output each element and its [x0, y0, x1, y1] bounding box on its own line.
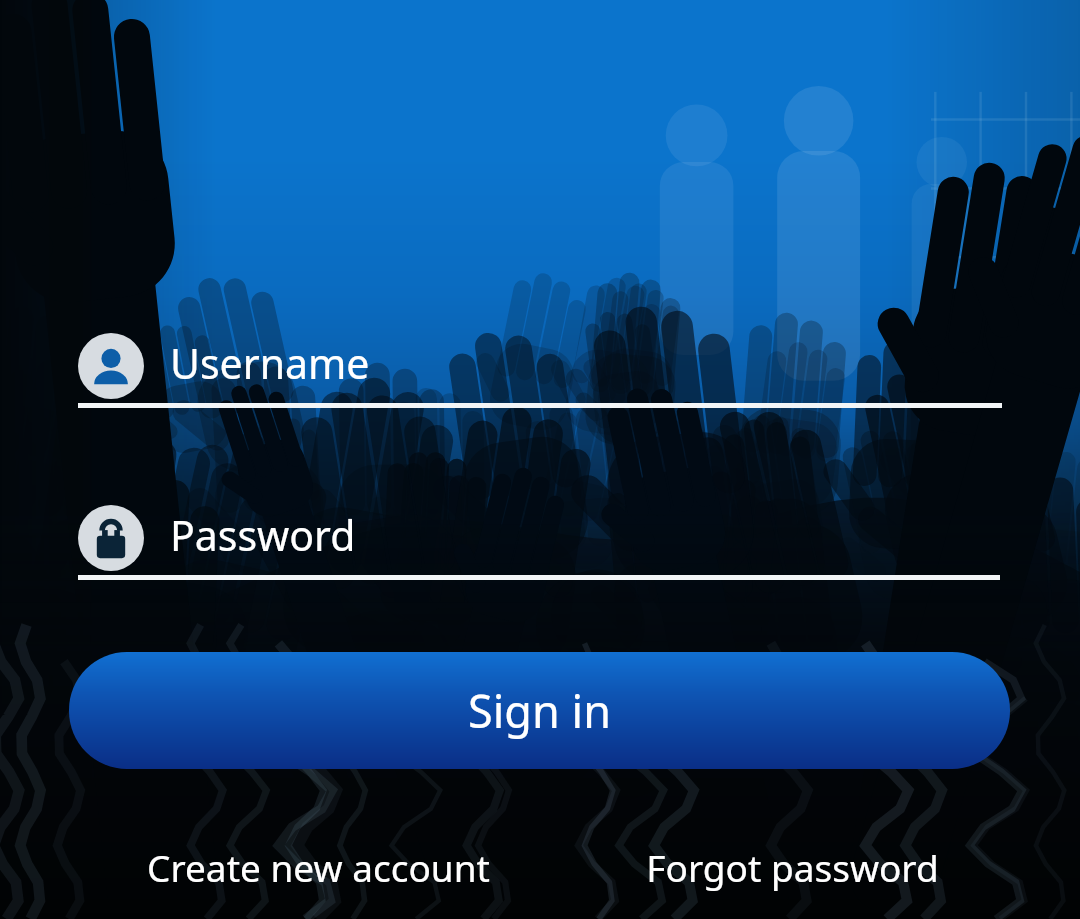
staticText: Username	[170, 335, 370, 391]
staticText: Password	[170, 507, 356, 563]
other: Password	[78, 505, 144, 571]
button[interactable]: Forgot password	[618, 836, 966, 898]
button[interactable]: Sign in	[69, 652, 1010, 769]
staticText: Create new account	[147, 842, 490, 892]
other: Username	[78, 333, 144, 399]
staticText: Forgot password	[646, 842, 939, 892]
button[interactable]: Password	[78, 502, 1000, 580]
button[interactable]: Username	[78, 330, 1002, 408]
staticText: Sign in	[468, 680, 611, 741]
button[interactable]: Create new account	[118, 836, 518, 898]
